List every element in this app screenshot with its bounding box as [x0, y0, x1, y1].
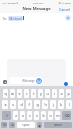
button[interactable]: Apps — [3, 80, 7, 84]
button[interactable]: r — [24, 89, 29, 98]
staticText: i — [54, 91, 55, 96]
staticText: e — [18, 91, 21, 96]
staticText: x — [22, 113, 24, 118]
staticText: d — [20, 102, 23, 107]
button[interactable]: Michael — [8, 16, 23, 21]
button[interactable]: h — [42, 100, 48, 109]
button[interactable]: y — [38, 89, 43, 98]
staticText: c — [29, 113, 31, 118]
staticText: a — [4, 102, 7, 107]
button[interactable]: Add contact — [65, 15, 71, 21]
staticText: ⌫ — [64, 114, 70, 118]
button[interactable]: 123 — [1, 122, 7, 128]
button[interactable]: n — [48, 111, 53, 120]
staticText: k — [60, 102, 62, 107]
button[interactable]: w — [10, 89, 15, 98]
button[interactable]: f — [26, 100, 32, 109]
staticText: ⊕ — [11, 123, 14, 127]
staticText: b — [42, 113, 45, 118]
button[interactable]: j — [50, 100, 56, 109]
button[interactable]: a — [2, 100, 8, 109]
button[interactable]: iMessage — [9, 77, 43, 84]
button[interactable]: ◉ — [37, 122, 42, 128]
staticText: space — [22, 123, 30, 127]
staticText: Cancel — [59, 7, 70, 12]
staticText: To: — [2, 16, 7, 21]
staticText: ••••• Carrier ▾ — [2, 1, 18, 4]
button[interactable]: o — [59, 89, 64, 98]
button[interactable]: Send — [64, 82, 68, 86]
staticText: f — [28, 102, 30, 107]
staticText: n — [49, 113, 52, 118]
staticText: p — [67, 91, 70, 96]
staticText: g — [36, 102, 39, 107]
button[interactable]: i — [52, 89, 57, 98]
button[interactable]: p — [66, 89, 71, 98]
button[interactable]: Cancel — [58, 7, 71, 12]
staticText: z — [15, 113, 17, 118]
button[interactable]: u — [45, 89, 50, 98]
button[interactable]: s — [10, 100, 16, 109]
button[interactable]: return — [44, 122, 72, 128]
staticText: iMessage — [22, 79, 35, 83]
button[interactable]: m — [55, 111, 60, 120]
button[interactable]: x — [20, 111, 25, 120]
staticText: j — [53, 102, 54, 107]
button[interactable]: ⇧ — [2, 111, 11, 120]
staticText: Michael — [9, 16, 22, 21]
staticText: m — [56, 113, 60, 118]
staticText: ⇧ — [5, 114, 9, 118]
staticText: t — [33, 91, 35, 96]
staticText: 9:41 AM — [33, 1, 43, 4]
staticText: ◉ — [38, 124, 41, 127]
staticText: u — [46, 91, 49, 96]
button[interactable]: ⊕ — [9, 122, 15, 128]
staticText: return — [54, 123, 62, 127]
button[interactable]: g — [34, 100, 40, 109]
staticText: o — [60, 91, 63, 96]
button[interactable]: ⌫ — [62, 111, 71, 120]
staticText: s — [12, 102, 14, 107]
staticText: New Message — [22, 6, 51, 12]
button[interactable]: v — [34, 111, 39, 120]
button[interactable]: b — [41, 111, 46, 120]
button[interactable]: l — [66, 100, 72, 109]
staticText: y — [40, 91, 42, 96]
button[interactable]: e — [17, 89, 22, 98]
staticText: 123 — [2, 123, 7, 127]
staticText: r — [26, 91, 28, 96]
staticText: w — [11, 91, 14, 96]
button[interactable]: space — [17, 122, 35, 128]
staticText: ✲ ▭ 100% — [58, 1, 71, 4]
button[interactable]: z — [13, 111, 18, 120]
button[interactable]: c — [27, 111, 32, 120]
button[interactable]: t — [31, 89, 36, 98]
button[interactable]: q — [3, 89, 8, 98]
staticText: q — [4, 91, 7, 96]
staticText: l — [69, 102, 70, 107]
staticText: v — [36, 113, 38, 118]
button[interactable]: k — [58, 100, 64, 109]
staticText: h — [44, 102, 47, 107]
button[interactable]: d — [18, 100, 24, 109]
